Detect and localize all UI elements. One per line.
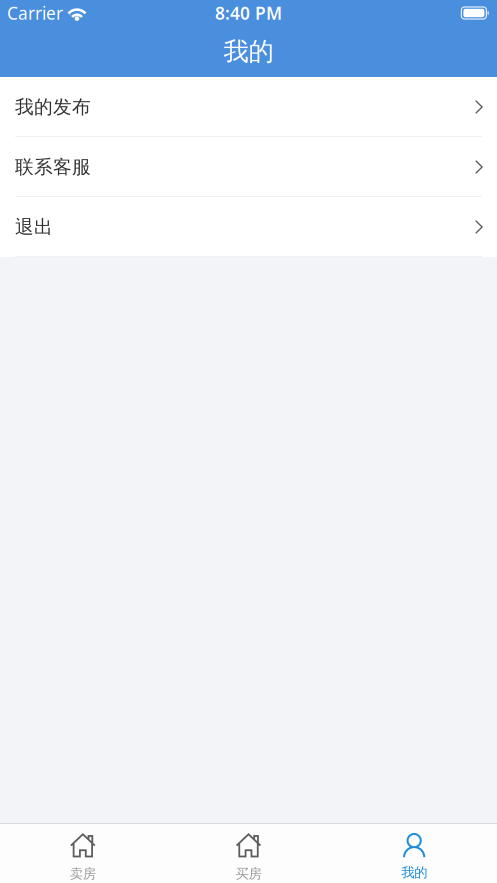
staticText: 卖房 <box>70 866 96 882</box>
staticText: 买房 <box>235 866 261 882</box>
staticText: 退出 <box>15 215 53 238</box>
button[interactable]: 卖房 <box>0 824 166 883</box>
staticText: 我的 <box>223 36 273 67</box>
button[interactable]: 买房 <box>166 824 331 883</box>
button[interactable]: 我的发布 <box>0 77 497 137</box>
staticText: Carrier <box>7 1 63 24</box>
staticText: 8:40 PM <box>215 1 282 24</box>
button[interactable]: 退出 <box>0 197 497 257</box>
staticText: 联系客服 <box>15 155 91 178</box>
button[interactable]: 我的 <box>331 824 497 883</box>
staticText: 我的 <box>401 864 427 881</box>
button[interactable]: 联系客服 <box>0 137 497 197</box>
staticText: 我的发布 <box>15 95 91 118</box>
